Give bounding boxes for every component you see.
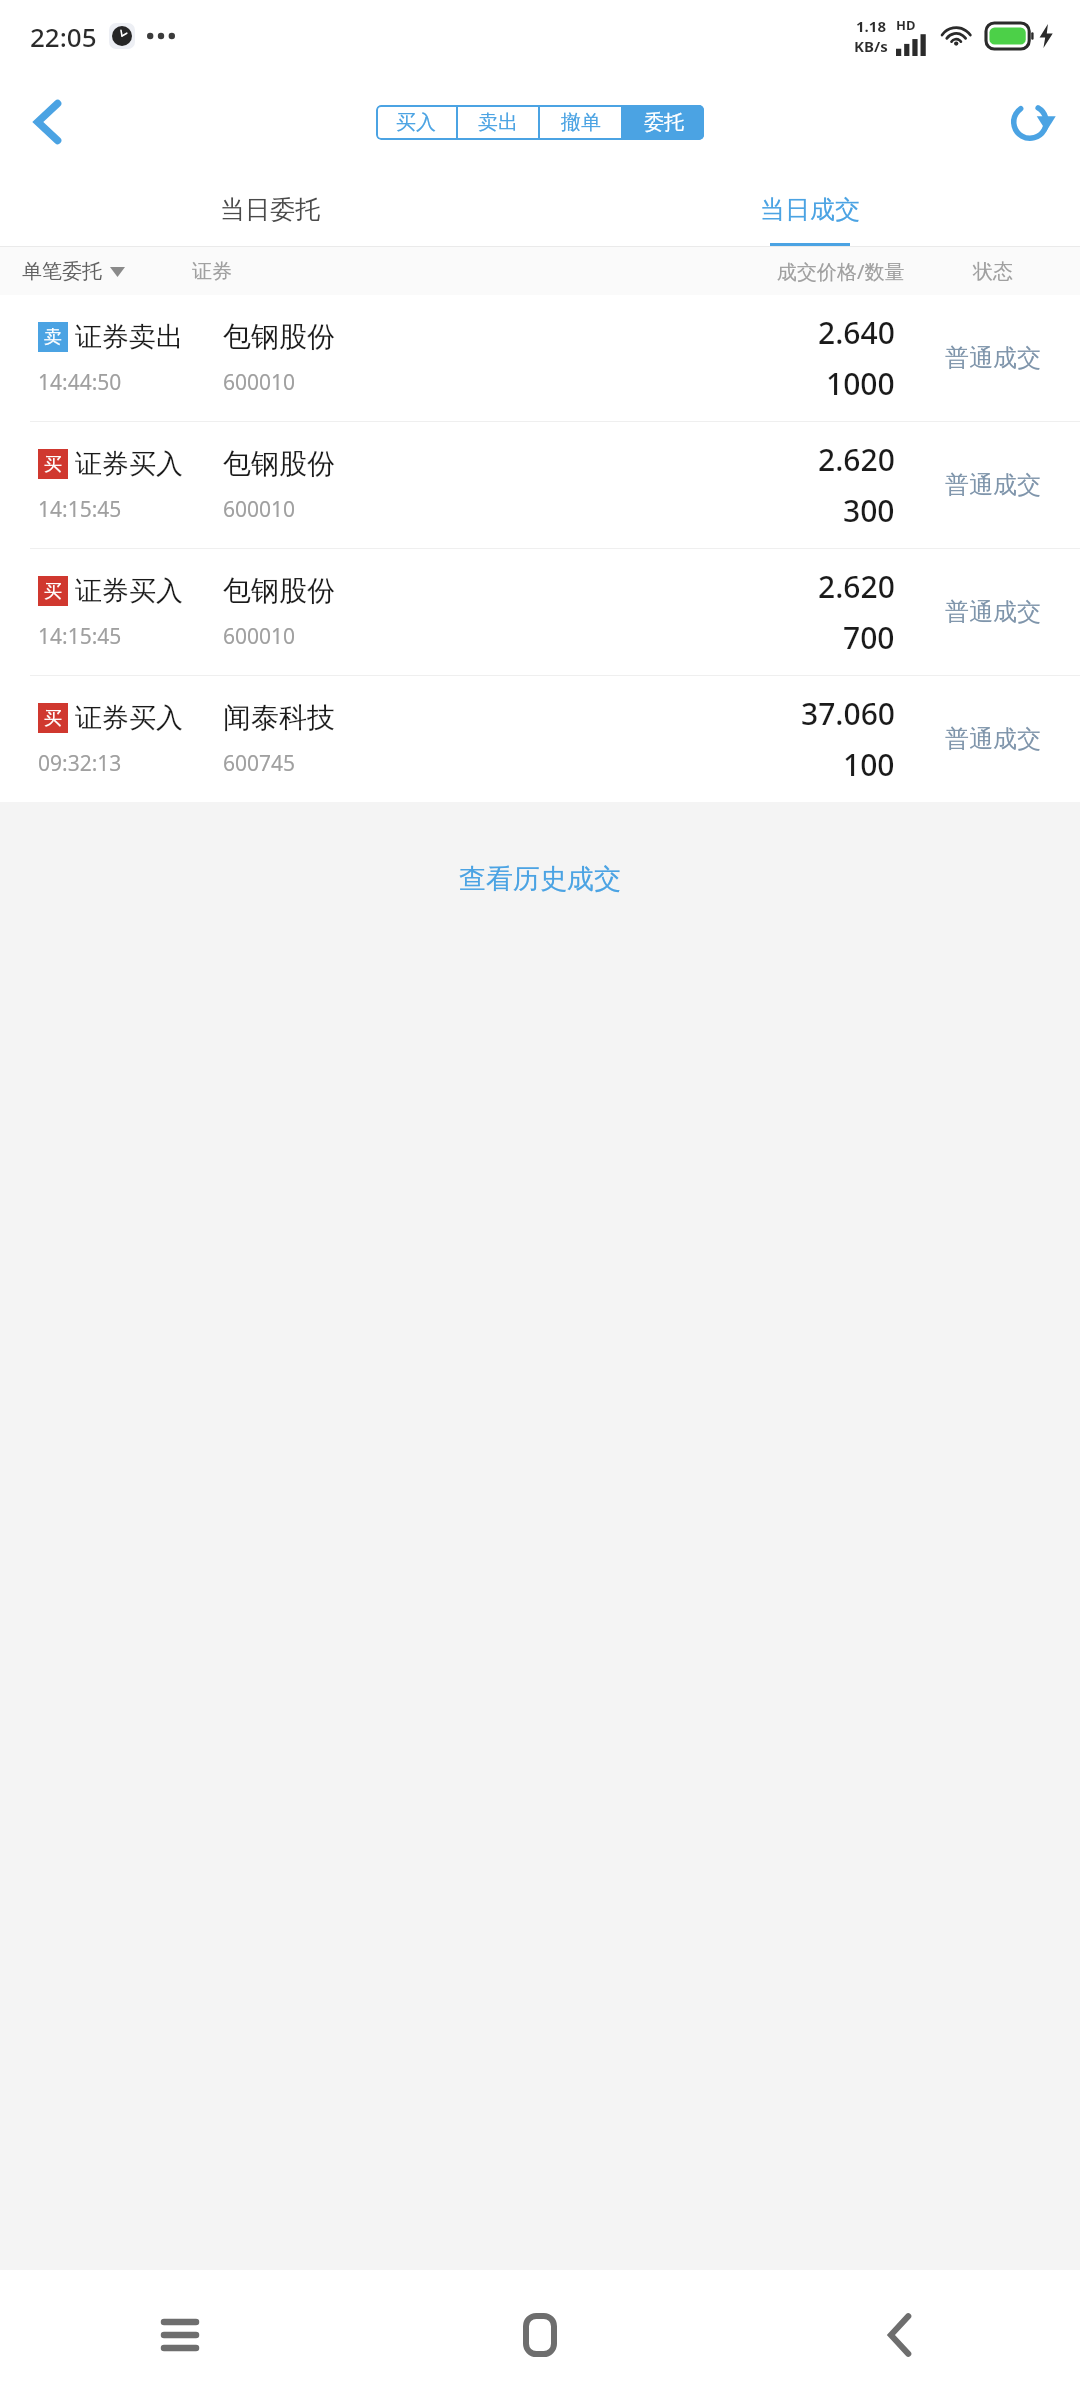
button[interactable]: 单笔委托 bbox=[0, 247, 1080, 295]
staticText: 包钢股份 bbox=[223, 319, 335, 354]
staticText: 单笔委托 bbox=[22, 259, 102, 284]
staticText: 22:05 bbox=[30, 19, 97, 54]
button[interactable]: 委托 bbox=[623, 105, 704, 140]
staticText: 证券卖出 bbox=[75, 320, 183, 354]
button[interactable]: Home bbox=[360, 2270, 720, 2400]
button[interactable]: Refresh bbox=[996, 88, 1064, 156]
staticText: 普通成交 bbox=[945, 724, 1041, 754]
staticText: 包钢股份 bbox=[223, 446, 335, 481]
staticText: 买 bbox=[44, 707, 62, 730]
staticText: 委托 bbox=[644, 110, 684, 135]
staticText: 09:32:13 bbox=[38, 749, 122, 778]
staticText: 成交价格/数量 bbox=[777, 258, 905, 285]
staticText: 证券买入 bbox=[75, 574, 183, 608]
button[interactable]: Back bbox=[720, 2270, 1080, 2400]
button[interactable]: 撤单 bbox=[540, 105, 621, 140]
button[interactable]: 买 bbox=[0, 676, 1080, 802]
staticText: 卖出 bbox=[478, 110, 518, 135]
staticText: 卖 bbox=[44, 326, 62, 349]
button[interactable]: Back bbox=[14, 88, 82, 156]
staticText: 300 bbox=[843, 490, 895, 531]
staticText: 14:15:45 bbox=[38, 622, 122, 651]
staticText: 买 bbox=[44, 580, 62, 603]
staticText: 普通成交 bbox=[945, 343, 1041, 373]
staticText: 600010 bbox=[223, 368, 296, 397]
staticText: 当日成交 bbox=[760, 194, 860, 225]
staticText: 包钢股份 bbox=[223, 573, 335, 608]
staticText: 600745 bbox=[223, 749, 296, 778]
button[interactable]: 买 bbox=[0, 422, 1080, 548]
staticText: 状态 bbox=[973, 259, 1013, 284]
staticText: 1000 bbox=[826, 363, 895, 404]
button[interactable]: 卖 bbox=[0, 295, 1080, 421]
staticText: 2.620 bbox=[818, 566, 895, 607]
staticText: 证券买入 bbox=[75, 701, 183, 735]
staticText: 普通成交 bbox=[945, 470, 1041, 500]
staticText: 700 bbox=[843, 617, 895, 658]
staticText: 当日委托 bbox=[220, 194, 320, 225]
button[interactable]: 买入 bbox=[376, 105, 456, 140]
button[interactable]: 查看历史成交 bbox=[429, 850, 651, 908]
button[interactable]: 当日成交 bbox=[540, 172, 1080, 247]
staticText: 2.620 bbox=[818, 439, 895, 480]
staticText: 600010 bbox=[223, 622, 296, 651]
button[interactable]: 卖出 bbox=[458, 105, 538, 140]
staticText: 14:15:45 bbox=[38, 495, 122, 524]
staticText: HD bbox=[896, 16, 916, 34]
staticText: 600010 bbox=[223, 495, 296, 524]
staticText: 普通成交 bbox=[945, 597, 1041, 627]
staticText: 37.060 bbox=[801, 693, 895, 734]
staticText: 买 bbox=[44, 453, 62, 476]
staticText: 买入 bbox=[396, 110, 436, 135]
button[interactable]: 当日委托 bbox=[0, 172, 540, 247]
staticText: 撤单 bbox=[561, 110, 601, 135]
staticText: 1.18 bbox=[856, 16, 886, 36]
staticText: 14:44:50 bbox=[38, 368, 122, 397]
button[interactable]: 买 bbox=[0, 549, 1080, 675]
button[interactable]: Recent apps bbox=[0, 2270, 360, 2400]
staticText: 证券 bbox=[192, 259, 232, 284]
staticText: 查看历史成交 bbox=[459, 862, 621, 896]
staticText: KB/s bbox=[854, 36, 888, 56]
staticText: 闻泰科技 bbox=[223, 700, 335, 735]
staticText: 证券买入 bbox=[75, 447, 183, 481]
staticText: 2.640 bbox=[818, 312, 895, 353]
staticText: 100 bbox=[843, 744, 895, 785]
